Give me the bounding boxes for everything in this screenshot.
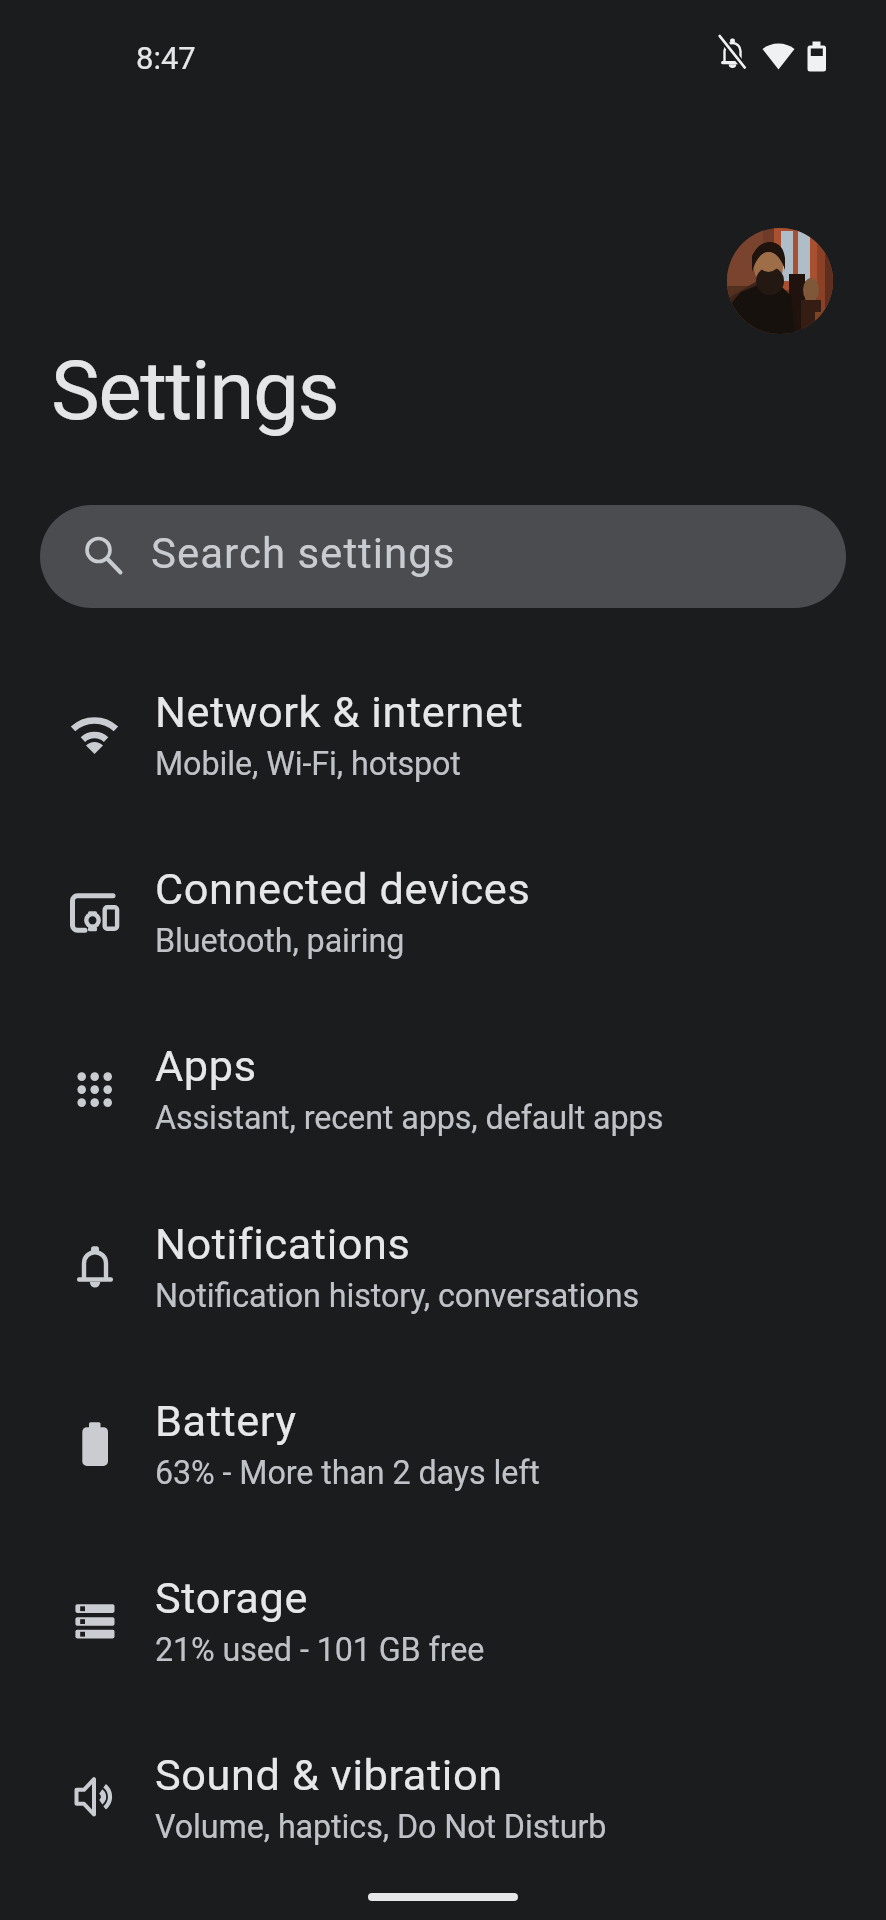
button[interactable]: Notifications — [0, 1181, 886, 1359]
staticText: Storage — [155, 1573, 308, 1624]
staticText: Assistant, recent apps, default apps — [155, 1099, 664, 1137]
staticText: Apps — [155, 1041, 257, 1092]
staticText: Sound & vibration — [155, 1750, 503, 1801]
button[interactable]: Sound & vibration — [0, 1712, 886, 1890]
staticText: 21% used - 101 GB free — [155, 1631, 485, 1669]
button[interactable]: Connected devices — [0, 826, 886, 1004]
staticText: Settings — [51, 343, 339, 439]
staticText: Mobile, Wi-Fi, hotspot — [155, 745, 461, 783]
button[interactable]: Network & internet — [0, 649, 886, 827]
button[interactable]: Storage — [0, 1535, 886, 1713]
staticText: 8:47 — [136, 40, 196, 76]
staticText: 63% - More than 2 days left — [155, 1454, 540, 1492]
staticText: Bluetooth, pairing — [155, 922, 405, 960]
staticText: Notifications — [155, 1219, 411, 1270]
button[interactable]: Battery — [0, 1358, 886, 1536]
staticText: Network & internet — [155, 687, 524, 738]
staticText: Battery — [155, 1396, 297, 1447]
staticText: Connected devices — [155, 864, 531, 915]
staticText: Notification history, conversations — [155, 1277, 639, 1315]
staticText: Volume, haptics, Do Not Disturb — [155, 1808, 607, 1846]
button[interactable]: Apps — [0, 1003, 886, 1181]
button[interactable] — [727, 228, 833, 334]
staticText: Search settings — [151, 529, 456, 578]
button[interactable]: Search settings — [40, 505, 846, 608]
